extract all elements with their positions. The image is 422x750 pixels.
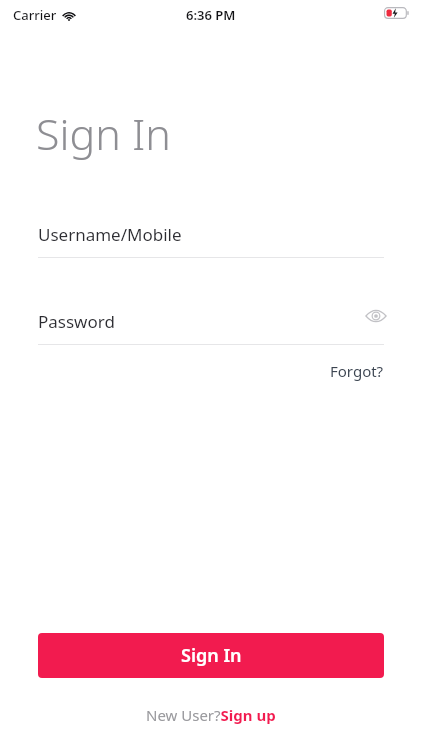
staticText: 6:36 PM [186,6,236,24]
button[interactable]: New User?Sign up [146,705,276,725]
staticText: Sign In [36,104,171,163]
staticText: Forgot? [330,361,384,381]
button[interactable]: Show password [363,303,389,329]
staticText: New User?Sign up [146,705,276,725]
staticText: Password [38,310,115,333]
button[interactable]: Forgot? [328,359,386,383]
button[interactable]: Sign In [38,633,384,678]
staticText: Username/Mobile [38,223,182,246]
staticText: Carrier [13,6,57,24]
staticText: Sign In [181,643,242,668]
